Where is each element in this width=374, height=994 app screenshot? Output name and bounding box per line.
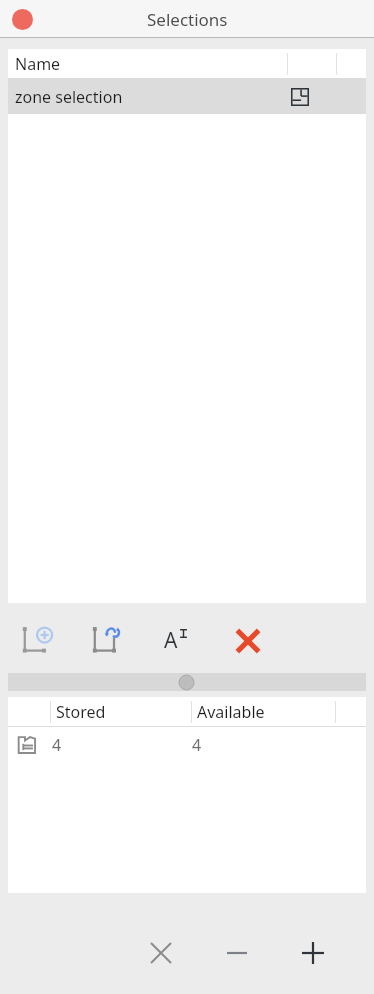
- staticText: zone selection: [15, 86, 123, 108]
- button[interactable]: Rename selection: [154, 617, 202, 665]
- other: Selection set: [16, 734, 38, 756]
- button[interactable]: Update selection: [84, 617, 132, 665]
- staticText: Selections: [147, 8, 228, 31]
- button[interactable]: Add selection: [14, 617, 62, 665]
- button[interactable]: zone selection: [8, 79, 366, 114]
- button[interactable]: Selection set: [8, 727, 366, 763]
- button[interactable]: Add: [289, 929, 337, 977]
- staticText: A: [164, 626, 178, 652]
- staticText: Name: [15, 53, 61, 75]
- staticText: Available: [197, 701, 265, 723]
- staticText: Stored: [56, 701, 106, 723]
- button[interactable]: Remove: [213, 929, 261, 977]
- button[interactable]: Close window: [10, 7, 34, 31]
- button[interactable]: Clear: [137, 929, 185, 977]
- other: Zone layout: [289, 86, 311, 108]
- other: Slider: [179, 675, 194, 690]
- staticText: 4: [52, 734, 62, 756]
- staticText: 4: [192, 734, 202, 756]
- button[interactable]: Delete selection: [224, 617, 272, 665]
- button[interactable]: Slider: [8, 673, 366, 691]
